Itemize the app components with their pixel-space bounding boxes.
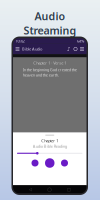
staticText: In the beginning God created the heaven …: [23, 67, 77, 78]
button[interactable]: Recents: [67, 187, 71, 191]
button[interactable]: Previous: [31, 159, 38, 166]
staticText: □: [67, 187, 71, 191]
button[interactable]: Back: [29, 187, 32, 191]
staticText: Audio Bible Reading: [33, 143, 67, 149]
staticText: Bible Audio: [22, 46, 42, 52]
staticText: ◁: [29, 187, 32, 191]
button[interactable]: More: [80, 46, 84, 51]
staticText: Audio: [34, 9, 65, 23]
staticText: Chapter 1: [41, 138, 58, 143]
staticText: ◯: [47, 187, 51, 191]
staticText: 10:42: [15, 38, 24, 44]
button[interactable]: Next: [61, 159, 68, 166]
button[interactable]: Play: [45, 158, 54, 168]
staticText: ♪: [67, 46, 70, 52]
button[interactable]: Menu: [15, 46, 19, 51]
button[interactable]: Music: [66, 46, 71, 51]
staticText: 64%: [77, 38, 84, 44]
staticText: Streaming: [23, 23, 76, 37]
button[interactable]: Sync: [73, 46, 78, 51]
button[interactable]: Home: [47, 187, 51, 191]
staticText: Chapter 1 · Verse 1: [33, 60, 66, 65]
